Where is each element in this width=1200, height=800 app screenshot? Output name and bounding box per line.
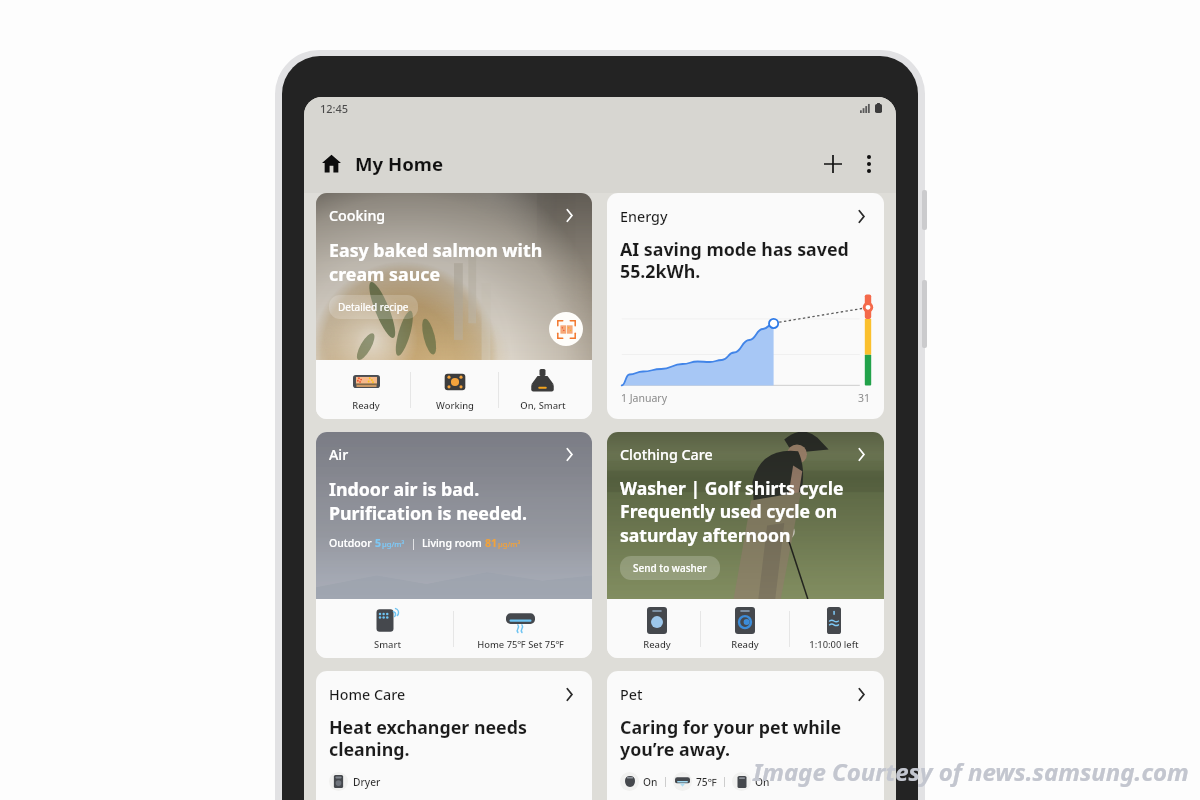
staticText: 5 bbox=[375, 536, 382, 550]
button[interactable]: Home 75℉ Set 75℉ bbox=[454, 599, 586, 658]
staticText: Clothing Care bbox=[620, 445, 713, 464]
staticText: On bbox=[755, 775, 770, 789]
button[interactable]: Oven bbox=[549, 312, 583, 346]
button[interactable]: Open Energy bbox=[850, 207, 872, 226]
button[interactable]: Air bbox=[316, 432, 592, 658]
button[interactable]: 1:10:00 left bbox=[790, 599, 878, 658]
staticText: 1 January bbox=[621, 391, 668, 405]
staticText: Detailed recipe bbox=[338, 300, 409, 314]
button[interactable]: On, Smart bbox=[499, 360, 586, 419]
button[interactable]: Pet bbox=[607, 671, 884, 800]
staticText: On, Smart bbox=[520, 399, 566, 412]
button[interactable]: Energy bbox=[607, 193, 884, 419]
staticText: Indoor air is bad. Purification is neede… bbox=[329, 477, 528, 525]
staticText: Washer | Golf shirts cycle Frequently us… bbox=[620, 476, 844, 548]
button[interactable]: Open Cooking bbox=[558, 206, 580, 225]
staticText: Dryer bbox=[353, 775, 381, 789]
button[interactable]: Ready bbox=[613, 599, 700, 658]
staticText: My Home bbox=[355, 151, 444, 176]
staticText: 81 bbox=[485, 536, 498, 550]
button[interactable]: Ready bbox=[701, 599, 789, 658]
staticText: Heat exchanger needs cleaning. bbox=[329, 715, 527, 761]
staticText: Ready bbox=[731, 638, 759, 651]
button[interactable]: Open Clothing Care bbox=[850, 445, 872, 464]
button[interactable]: Add device bbox=[816, 147, 850, 181]
staticText: 12:45 bbox=[320, 101, 349, 116]
button[interactable]: Working bbox=[411, 360, 498, 419]
button[interactable]: Open Air bbox=[558, 445, 580, 464]
staticText: | bbox=[405, 536, 422, 550]
staticText: 1:10:00 left bbox=[809, 638, 859, 651]
button[interactable]: Smart bbox=[322, 599, 453, 658]
staticText: Outdoor bbox=[329, 536, 375, 550]
button[interactable]: Open Home Care bbox=[558, 685, 580, 704]
staticText: Ready bbox=[643, 638, 671, 651]
staticText: Cooking bbox=[329, 206, 386, 225]
staticText: Send to washer bbox=[633, 561, 707, 575]
staticText: µg/m³ bbox=[498, 539, 521, 549]
staticText: Home 75℉ Set 75℉ bbox=[477, 638, 564, 651]
button[interactable]: Home Care bbox=[316, 671, 592, 800]
button[interactable]: More options bbox=[852, 147, 886, 181]
staticText: 75℉ bbox=[696, 775, 717, 789]
button[interactable]: Cooking bbox=[316, 193, 592, 419]
staticText: Energy bbox=[620, 207, 668, 226]
staticText: Caring for your pet while you’re away. bbox=[620, 715, 842, 761]
button[interactable]: Clothing Care bbox=[607, 432, 884, 658]
button[interactable]: My Home bbox=[316, 148, 450, 179]
staticText: Ready bbox=[352, 399, 380, 412]
staticText: 31 bbox=[858, 391, 871, 405]
staticText: Living room bbox=[422, 536, 485, 550]
staticText: Pet bbox=[620, 685, 643, 704]
staticText: Home Care bbox=[329, 685, 406, 704]
staticText: Easy baked salmon with cream sauce bbox=[329, 238, 543, 286]
staticText: Working bbox=[436, 399, 474, 412]
button[interactable]: Open Pet bbox=[850, 685, 872, 704]
button[interactable]: Send to washer bbox=[620, 556, 720, 580]
button[interactable]: Ready bbox=[322, 360, 410, 419]
staticText: µg/m³ bbox=[382, 539, 405, 549]
staticText: On bbox=[643, 775, 658, 789]
staticText: AI saving mode has saved 55.2kWh. bbox=[620, 237, 849, 284]
staticText: Air bbox=[329, 445, 349, 464]
staticText: Image Courtesy of news.samsung.com bbox=[753, 755, 1189, 788]
button[interactable]: Detailed recipe bbox=[329, 295, 418, 319]
staticText: Smart bbox=[374, 638, 401, 651]
